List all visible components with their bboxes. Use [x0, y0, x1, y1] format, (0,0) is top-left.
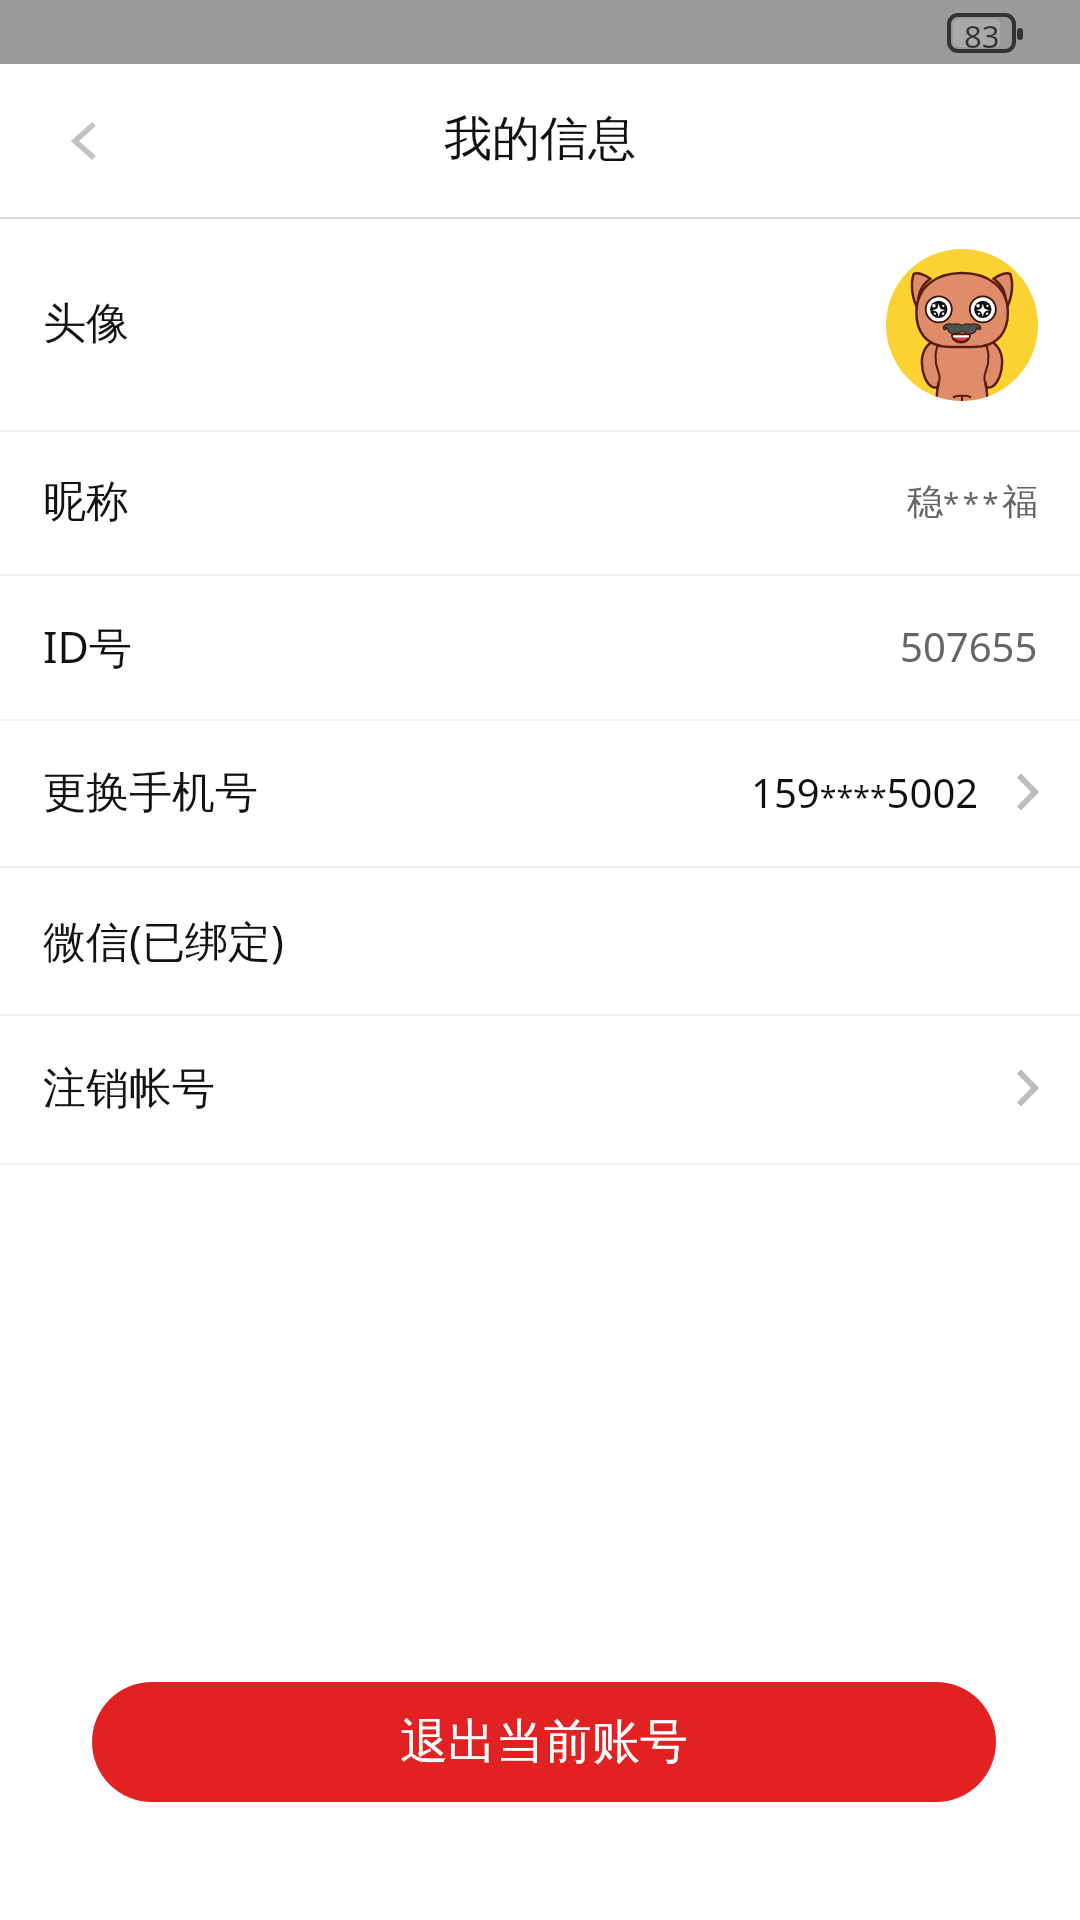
- button[interactable]: 头像: [0, 219, 1080, 430]
- staticText: 159****5002: [751, 765, 979, 819]
- staticText: 83: [964, 15, 1000, 51]
- staticText: 507655: [900, 619, 1038, 673]
- staticText: 微信(已绑定): [43, 911, 284, 970]
- staticText: 稳***福: [907, 479, 1038, 524]
- button[interactable]: ID号: [0, 576, 1080, 719]
- staticText: 退出当前账号: [400, 1712, 688, 1772]
- button[interactable]: Avatar: [886, 249, 1038, 401]
- button[interactable]: 退出当前账号: [92, 1682, 996, 1802]
- staticText: 注销帐号: [43, 1062, 215, 1116]
- button[interactable]: 微信(已绑定): [0, 868, 1080, 1014]
- button[interactable]: 昵称: [0, 432, 1080, 574]
- staticText: 我的信息: [444, 109, 636, 169]
- staticText: 头像: [43, 297, 129, 351]
- staticText: ID号: [43, 617, 132, 676]
- button[interactable]: Back: [25, 82, 143, 200]
- button[interactable]: 更换手机号: [0, 721, 1080, 866]
- button[interactable]: 注销帐号: [0, 1016, 1080, 1163]
- staticText: 昵称: [43, 475, 129, 529]
- staticText: 更换手机号: [43, 766, 258, 820]
